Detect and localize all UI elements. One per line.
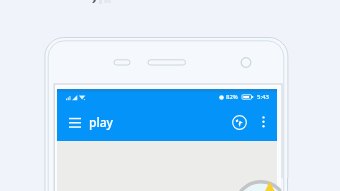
button[interactable]: Open navigation drawer: [65, 112, 85, 132]
staticText: 82%: [226, 93, 238, 101]
button[interactable]: More options: [254, 113, 272, 131]
staticText: play: [89, 114, 113, 130]
staticText: 5:43: [257, 93, 269, 101]
button[interactable]: Change language: [228, 111, 250, 133]
